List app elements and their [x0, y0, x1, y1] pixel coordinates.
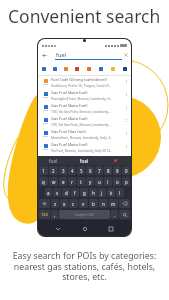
button[interactable]: Space [59, 210, 110, 219]
button[interactable]: w [49, 177, 58, 186]
button[interactable]: More options [124, 80, 128, 84]
button[interactable]: e [59, 177, 67, 186]
button[interactable]: Category 4 [71, 63, 83, 76]
button[interactable]: More options [124, 119, 128, 123]
button[interactable]: Category 3 [60, 63, 71, 76]
button[interactable]: Shift [39, 199, 50, 208]
button[interactable]: l [116, 188, 124, 197]
button[interactable]: Back [51, 223, 65, 234]
staticText: g [83, 190, 86, 196]
button[interactable]: r [68, 177, 76, 186]
staticText: f [74, 190, 76, 196]
button[interactable]: Category 1 [38, 63, 49, 76]
button[interactable]: Gas Fuel (Gas fuel) [38, 127, 131, 140]
button[interactable]: 123 [39, 210, 50, 219]
staticText: w [52, 179, 56, 185]
button[interactable]: m [109, 199, 118, 208]
button[interactable]: Recent apps [104, 223, 118, 234]
button[interactable]: 3 [59, 166, 67, 175]
staticText: s [56, 190, 59, 196]
button[interactable]: 5 [77, 166, 85, 175]
button[interactable] [100, 156, 131, 165]
button[interactable]: f [71, 188, 79, 197]
button[interactable]: Category 6 [95, 63, 107, 76]
staticText: Fuel Cafe (Dining (cafe/diner)) [51, 77, 107, 82]
staticText: Gas Fuel (Auto fuel) [51, 103, 88, 108]
button[interactable]: p [122, 177, 130, 186]
button[interactable]: . [111, 210, 118, 219]
button[interactable]: More options [124, 93, 128, 97]
button[interactable]: g [80, 188, 88, 197]
button[interactable]: a [45, 188, 52, 197]
button[interactable]: fuel [69, 156, 100, 165]
staticText: e [62, 179, 65, 185]
button[interactable]: y [86, 177, 94, 186]
button[interactable]: Gas Fuel (Auto fuel) [38, 114, 131, 127]
staticText: fuel [56, 51, 66, 59]
button[interactable]: Home [78, 223, 92, 234]
button[interactable]: c [69, 199, 78, 208]
staticText: 9 [116, 168, 119, 174]
button[interactable]: 8 [104, 166, 112, 175]
staticText: m [111, 201, 116, 207]
button[interactable]: Category 5 [83, 63, 95, 76]
staticText: , [54, 212, 56, 218]
staticText: o [116, 179, 119, 185]
button[interactable]: z [51, 199, 59, 208]
staticText: a [47, 190, 50, 196]
staticText: l [119, 190, 121, 196]
button[interactable]: 1 [39, 166, 48, 175]
button[interactable]: 7 [95, 166, 103, 175]
staticText: English (US) [75, 212, 94, 217]
button[interactable]: Category 7 [107, 63, 119, 76]
button[interactable]: More options [124, 106, 128, 110]
button[interactable]: b [89, 199, 98, 208]
staticText: h [92, 190, 95, 196]
button[interactable]: q [39, 177, 48, 186]
button[interactable]: Category 2 [49, 63, 60, 76]
button[interactable]: Gas Fuel (Auto fuel) [38, 140, 131, 153]
button[interactable]: d [62, 188, 70, 197]
button[interactable]: 0 [122, 166, 130, 175]
staticText: Gas Fuel (Auto fuel) [51, 142, 88, 147]
staticText: 4 [71, 168, 74, 174]
button[interactable]: h [89, 188, 97, 197]
button[interactable]: Search [119, 210, 130, 219]
staticText: y [89, 179, 92, 185]
button[interactable]: n [99, 199, 108, 208]
button[interactable]: i [104, 177, 112, 186]
staticText: Via Fuel, Brescia, Lombardy, Italy 2512… [51, 148, 113, 152]
staticText: Provaglio d'Iseo, Brescia, Lombardy, It… [51, 96, 113, 100]
button[interactable]: More options [124, 132, 128, 136]
button[interactable]: v [79, 199, 88, 208]
button[interactable]: x [60, 199, 68, 208]
other: Back [42, 53, 47, 58]
button[interactable]: o [113, 177, 121, 186]
staticText: j [101, 190, 103, 196]
button[interactable]: j [98, 188, 106, 197]
button[interactable]: 9 [113, 166, 121, 175]
button[interactable]: Backspace [119, 199, 130, 208]
button[interactable]: 6 [86, 166, 94, 175]
button[interactable]: 4 [68, 166, 76, 175]
button[interactable]: 2 [49, 166, 58, 175]
staticText: 6 [89, 168, 92, 174]
staticText: q [42, 179, 45, 185]
button[interactable]: fuel [38, 156, 69, 165]
button[interactable]: Gas Fuel (Auto fuel) [38, 101, 131, 114]
button[interactable]: k [107, 188, 115, 197]
button[interactable]: , [51, 210, 58, 219]
button[interactable]: More options [124, 145, 128, 149]
button[interactable]: Fuel Cafe (Dining (cafe/diner)) [38, 75, 131, 88]
staticText: 2 [52, 168, 55, 174]
staticText: 8 [107, 168, 110, 174]
button[interactable]: t [77, 177, 85, 186]
staticText: fuel [49, 158, 58, 164]
staticText: 1 [42, 168, 45, 174]
button[interactable]: Back [38, 50, 131, 62]
button[interactable]: Category 8 [119, 63, 131, 76]
button[interactable]: u [95, 177, 103, 186]
button[interactable]: Gas Fuel (Auto fuel) [38, 88, 131, 101]
button[interactable]: s [53, 188, 61, 197]
staticText: Vodickova, Praha 10, Prague, Czech R… [51, 83, 112, 87]
